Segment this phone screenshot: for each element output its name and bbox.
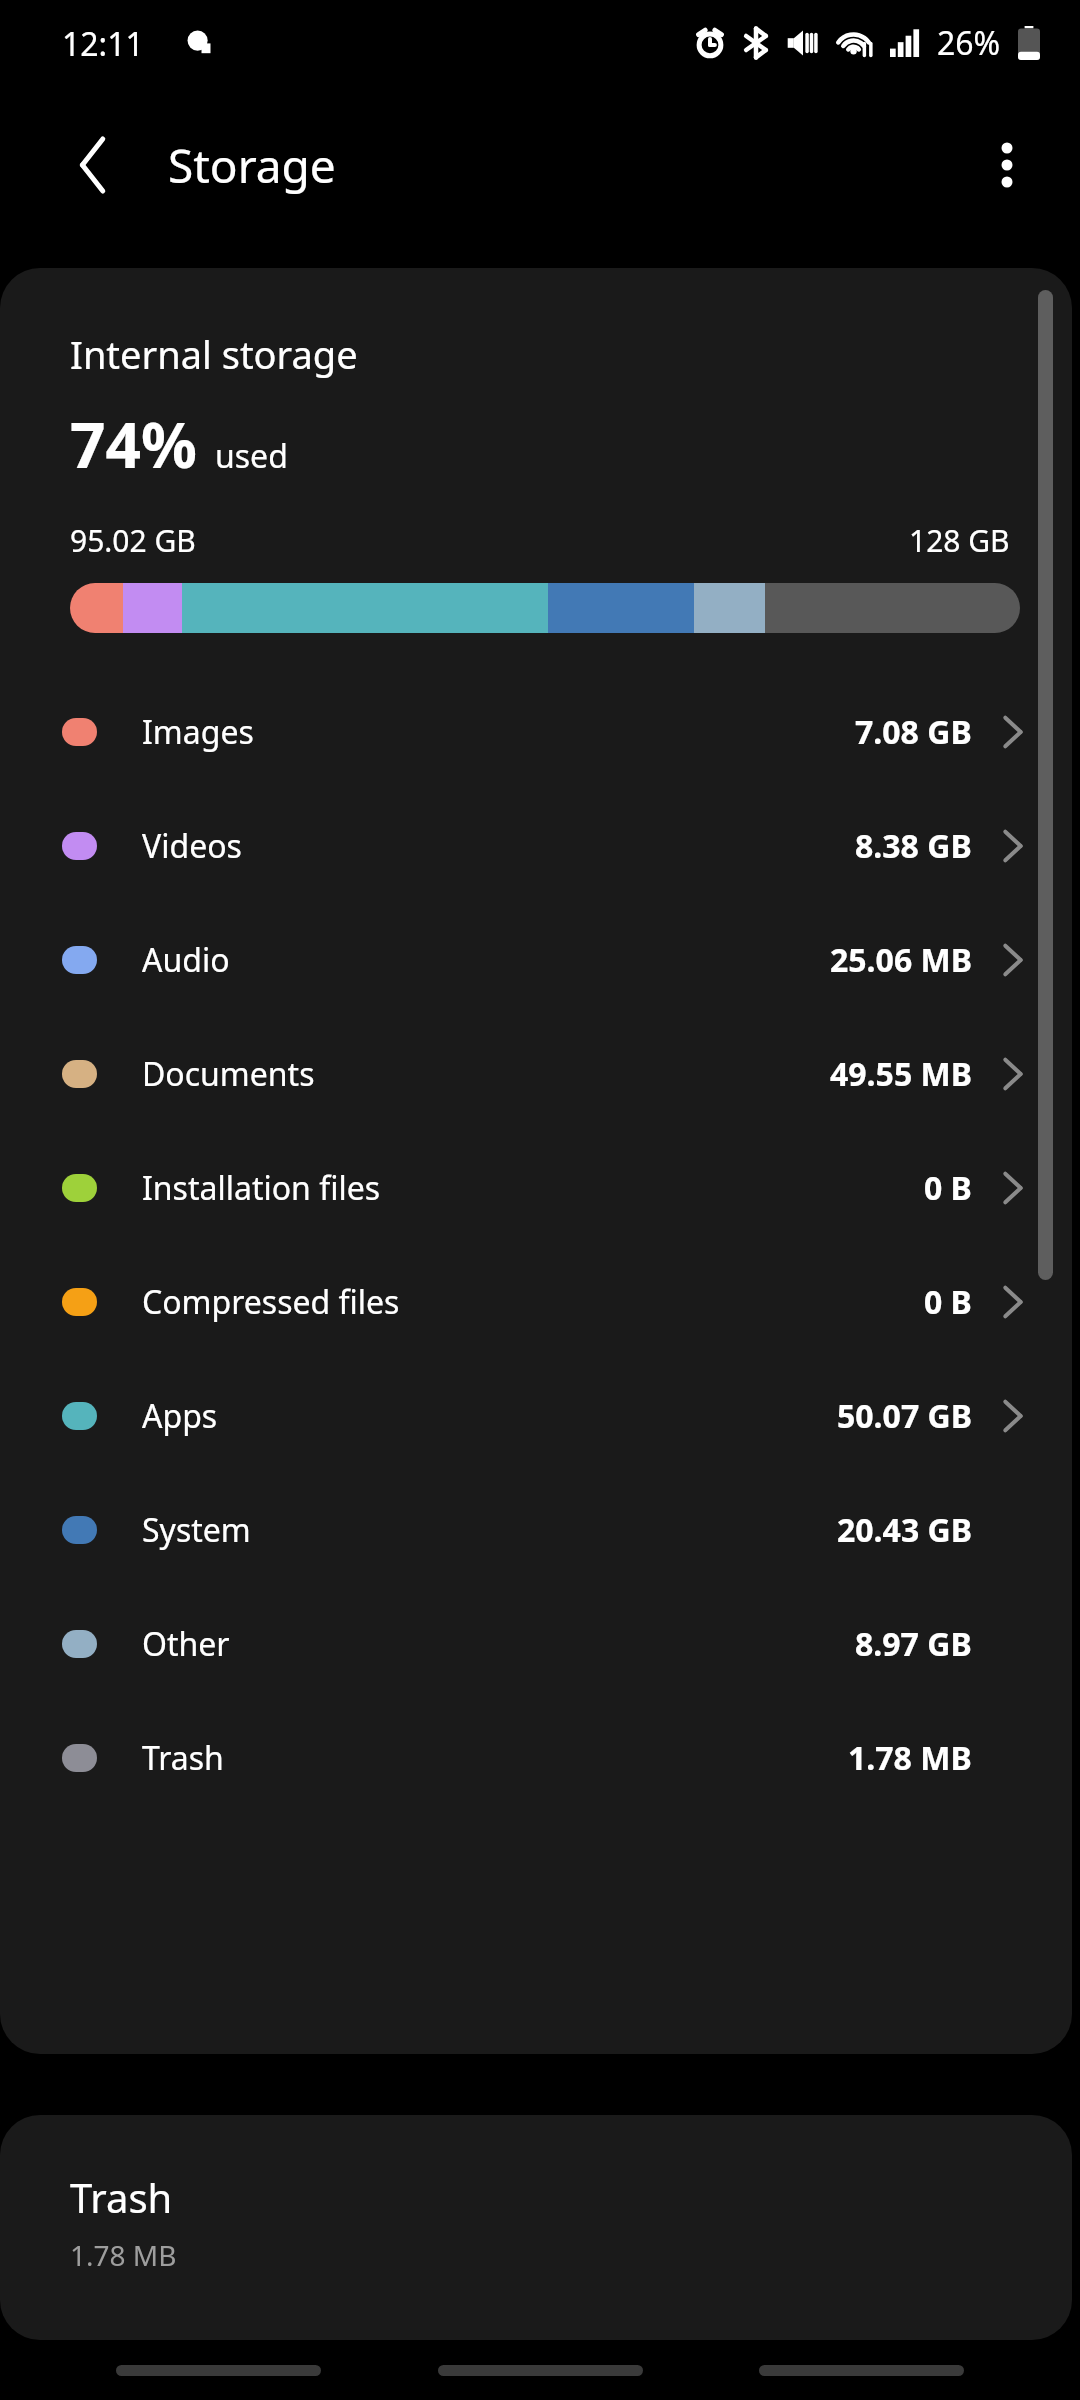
staticText: 12:11 bbox=[62, 22, 144, 66]
staticText: Storage bbox=[168, 134, 336, 197]
staticText: Trash bbox=[70, 2170, 173, 2224]
staticText: Images bbox=[142, 710, 254, 754]
staticText: 0 B bbox=[924, 1280, 972, 1324]
staticText: 7.08 GB bbox=[855, 710, 972, 754]
staticText: Videos bbox=[142, 824, 242, 868]
staticText: 50.07 GB bbox=[837, 1394, 972, 1438]
staticText: Trash bbox=[142, 1736, 224, 1780]
staticText: 49.55 MB bbox=[830, 1052, 972, 1096]
staticText: 25.06 MB bbox=[830, 938, 972, 982]
button[interactable]: Navigation button bbox=[116, 2365, 321, 2376]
staticText: Other bbox=[142, 1622, 230, 1666]
button[interactable]: Documents bbox=[0, 1017, 1072, 1131]
button[interactable]: Trash bbox=[0, 1701, 1072, 1815]
button[interactable]: More options bbox=[962, 120, 1052, 210]
staticText: Installation files bbox=[142, 1166, 381, 1210]
staticText: 0 B bbox=[924, 1166, 972, 1210]
button[interactable]: System bbox=[0, 1473, 1072, 1587]
button[interactable]: Navigation button bbox=[438, 2365, 643, 2376]
staticText: Audio bbox=[142, 938, 230, 982]
button[interactable]: Images bbox=[0, 675, 1072, 789]
staticText: Apps bbox=[142, 1394, 218, 1438]
staticText: 20.43 GB bbox=[837, 1508, 972, 1552]
staticText: System bbox=[142, 1508, 251, 1552]
button[interactable]: Compressed files bbox=[0, 1245, 1072, 1359]
button[interactable]: Other bbox=[0, 1587, 1072, 1701]
staticText: 1.78 MB bbox=[848, 1736, 972, 1780]
staticText: 8.38 GB bbox=[855, 824, 972, 868]
staticText: 128 GB bbox=[909, 520, 1010, 561]
staticText: Internal storage bbox=[70, 328, 358, 380]
staticText: 26% bbox=[937, 21, 1001, 65]
button[interactable]: Installation files bbox=[0, 1131, 1072, 1245]
staticText: 74% bbox=[70, 402, 197, 486]
button[interactable]: Apps bbox=[0, 1359, 1072, 1473]
staticText: 8.97 GB bbox=[855, 1622, 972, 1666]
button[interactable]: Audio bbox=[0, 903, 1072, 1017]
button[interactable]: Trash bbox=[0, 2115, 1072, 2340]
staticText: Documents bbox=[142, 1052, 315, 1096]
staticText: Compressed files bbox=[142, 1280, 400, 1324]
staticText: 95.02 GB bbox=[70, 520, 196, 561]
button[interactable]: Videos bbox=[0, 789, 1072, 903]
button[interactable]: Navigation button bbox=[759, 2365, 964, 2376]
staticText: used bbox=[215, 434, 288, 478]
staticText: 1.78 MB bbox=[70, 2236, 177, 2274]
button[interactable]: Back bbox=[48, 120, 138, 210]
